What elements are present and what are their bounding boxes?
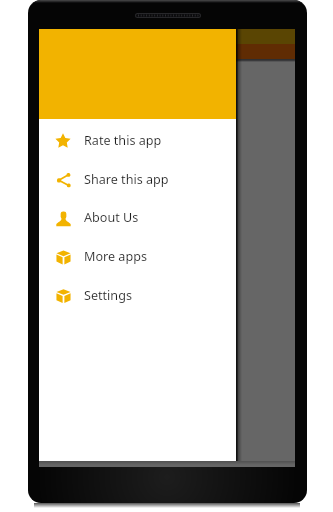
button[interactable]: Rate this app — [39, 122, 236, 160]
staticText: Settings — [84, 287, 132, 304]
button[interactable]: More apps — [39, 238, 236, 276]
button[interactable]: Settings — [39, 277, 236, 315]
staticText: Share this app — [84, 171, 169, 188]
staticText: More apps — [84, 248, 147, 265]
staticText: Rate this app — [84, 132, 162, 149]
staticText: About Us — [84, 209, 139, 226]
button[interactable]: About Us — [39, 199, 236, 237]
button[interactable]: Share this app — [39, 161, 236, 199]
